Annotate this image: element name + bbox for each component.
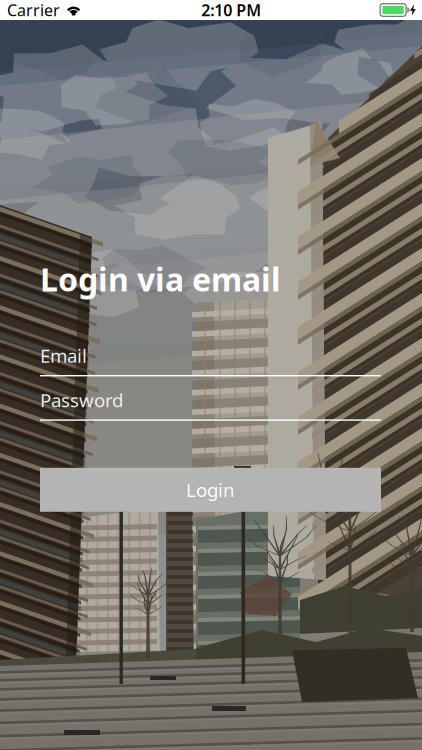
staticText: Email bbox=[40, 343, 87, 368]
staticText: Password bbox=[40, 387, 123, 412]
staticText: Login bbox=[186, 477, 235, 502]
button[interactable]: Login bbox=[40, 468, 381, 512]
staticText: Login via email bbox=[40, 258, 281, 300]
staticText: 2:10 PM bbox=[201, 0, 261, 21]
staticText: Carrier bbox=[7, 0, 60, 21]
